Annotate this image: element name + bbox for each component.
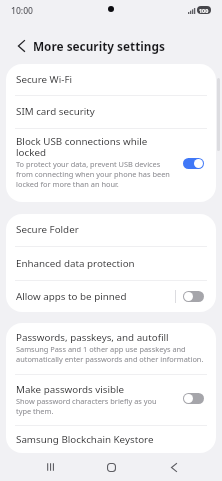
button[interactable]: Allow apps to be pinned [6, 281, 216, 312]
staticText: Block USB connections while locked [16, 136, 173, 158]
staticText: Allow apps to be pinned [16, 292, 127, 302]
button[interactable]: Passwords, passkeys, and autofill [6, 323, 216, 374]
button[interactable]: SIM card security [6, 96, 216, 128]
button[interactable]: Samsung Blockchain Keystore [6, 426, 216, 453]
button[interactable]: Make passwords visible [6, 375, 216, 425]
staticText: Make passwords visible [16, 384, 125, 395]
staticText: 10:00 [11, 5, 34, 17]
button[interactable]: Block USB connections while locked [6, 129, 216, 202]
button[interactable]: Secure Folder [6, 214, 216, 246]
staticText: Passwords, passkeys, and autofill [16, 333, 169, 343]
staticText: 100 [199, 7, 209, 14]
staticText: Samsung Blockchain Keystore [16, 435, 154, 445]
button[interactable]: Recent apps [28, 453, 72, 481]
staticText: More security settings [33, 38, 165, 54]
staticText: Secure Folder [16, 225, 79, 235]
button[interactable]: Turn off [183, 158, 204, 169]
staticText: To protect your data, prevent USB device… [16, 159, 173, 189]
button[interactable]: Turn on [183, 291, 204, 302]
staticText: Secure Wi-Fi [16, 75, 72, 85]
button[interactable]: Back [152, 453, 196, 481]
staticText: Samsung Pass and 1 other app use passkey… [16, 344, 206, 364]
staticText: Show password characters briefly as you … [16, 396, 166, 416]
button[interactable]: Navigate up [7, 32, 35, 60]
staticText: SIM card security [16, 107, 95, 117]
button[interactable]: Turn on [183, 393, 204, 404]
button[interactable]: Home [89, 453, 133, 481]
button[interactable]: Enhanced data protection [6, 247, 216, 280]
staticText: Enhanced data protection [16, 259, 135, 269]
button[interactable]: Secure Wi-Fi [6, 64, 216, 95]
